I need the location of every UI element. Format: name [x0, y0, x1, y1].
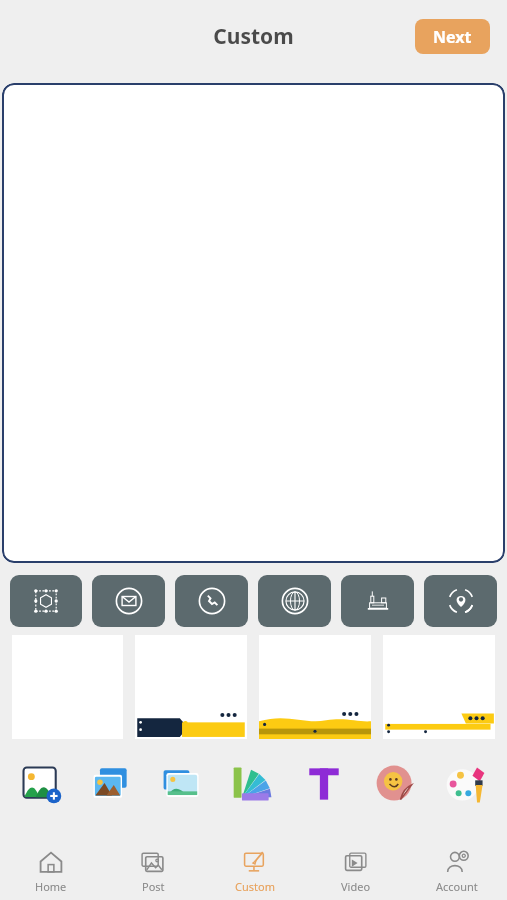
- button[interactable]: Email: [92, 575, 165, 627]
- button[interactable]: Logo: [10, 575, 82, 627]
- staticText: Custom: [213, 22, 294, 51]
- button[interactable]: Text: [288, 753, 359, 815]
- button[interactable]: Video: [305, 842, 406, 900]
- button[interactable]: Picture: [146, 753, 217, 815]
- button[interactable]: Post: [102, 842, 204, 900]
- button[interactable]: Phone: [175, 575, 248, 627]
- button[interactable]: Photos: [76, 753, 146, 815]
- button[interactable]: Add image: [6, 753, 76, 815]
- button[interactable]: Location: [424, 575, 497, 627]
- staticText: Video: [341, 879, 371, 894]
- button[interactable]: Business: [341, 575, 414, 627]
- button[interactable]: [2, 83, 505, 563]
- staticText: Next: [433, 26, 472, 48]
- staticText: Account: [436, 879, 478, 894]
- button[interactable]: Custom: [204, 842, 305, 900]
- staticText: Custom: [235, 879, 275, 894]
- button[interactable]: Website: [258, 575, 331, 627]
- button[interactable]: Colors: [217, 753, 288, 815]
- button[interactable]: Template 4: [383, 635, 495, 739]
- button[interactable]: Account: [406, 842, 507, 900]
- button[interactable]: Stickers: [359, 753, 430, 815]
- button[interactable]: Home: [0, 842, 102, 900]
- staticText: Home: [35, 879, 67, 894]
- button[interactable]: Palette: [430, 753, 501, 815]
- button[interactable]: Next: [415, 19, 490, 54]
- button[interactable]: Template 3: [259, 635, 371, 739]
- staticText: Post: [142, 879, 165, 894]
- button[interactable]: Template 2: [135, 635, 247, 739]
